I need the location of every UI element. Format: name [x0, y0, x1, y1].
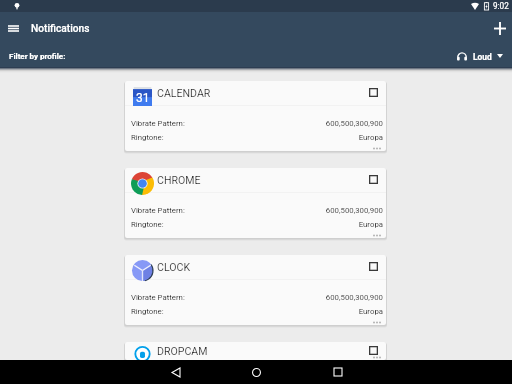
button[interactable]: CHROME	[125, 168, 386, 238]
button[interactable]: Recent apps	[297, 360, 378, 384]
staticText: Vibrate Pattern:	[131, 119, 185, 128]
button[interactable]: Add	[488, 13, 512, 44]
button[interactable]: Toggle CHROME	[369, 175, 378, 184]
button[interactable]: Toggle CLOCK	[369, 262, 378, 271]
button[interactable]: Back	[135, 360, 216, 384]
button[interactable]: Home	[216, 360, 297, 384]
button[interactable]: Open navigation menu	[0, 15, 28, 42]
staticText: 9:02	[493, 1, 509, 11]
staticText: CLOCK	[157, 261, 191, 273]
staticText: Filter by profile:	[9, 52, 66, 61]
staticText: Europa	[164, 133, 383, 142]
button[interactable]: DROPCAM	[125, 342, 386, 360]
staticText: Ringtone:	[131, 133, 164, 142]
staticText: CALENDAR	[157, 87, 211, 99]
staticText: 600,500,300,900	[185, 293, 383, 302]
staticText: Europa	[164, 220, 383, 229]
staticText: Vibrate Pattern:	[131, 206, 185, 215]
button[interactable]: CLOCK	[125, 255, 386, 325]
staticText: 31	[136, 91, 150, 105]
staticText: Ringtone:	[131, 307, 164, 316]
staticText: Europa	[164, 307, 383, 316]
staticText: DROPCAM	[157, 345, 208, 357]
staticText: 600,500,300,900	[185, 119, 383, 128]
button[interactable]: Toggle CALENDAR	[369, 88, 378, 97]
staticText: CHROME	[157, 174, 201, 186]
staticText: 600,500,300,900	[185, 206, 383, 215]
button[interactable]: Loud	[451, 47, 512, 65]
button[interactable]: 31	[125, 81, 386, 151]
staticText: Loud	[473, 52, 492, 62]
staticText: Ringtone:	[131, 220, 164, 229]
staticText: Notifications	[31, 23, 90, 35]
button[interactable]: Toggle DROPCAM	[369, 346, 378, 355]
staticText: Vibrate Pattern:	[131, 293, 185, 302]
